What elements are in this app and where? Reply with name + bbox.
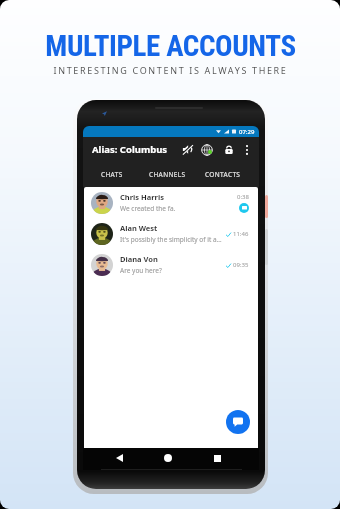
staticText: 0:38 [237, 193, 249, 201]
staticText: CHATS [101, 170, 123, 179]
staticText: We created the fa. [120, 204, 176, 213]
staticText: MULTIPLE ACCOUNTS [45, 29, 296, 63]
staticText: Alias: Columbus [92, 143, 168, 156]
button[interactable]: Network status [200, 143, 213, 156]
button[interactable]: Recent apps [210, 451, 224, 465]
staticText: 09:35 [233, 261, 249, 269]
button[interactable]: New message [226, 410, 250, 434]
button[interactable]: CONTACTS [195, 162, 250, 187]
staticText: CHANNELS [149, 170, 186, 179]
button[interactable]: More options [240, 143, 253, 156]
staticText: Diana Von [120, 254, 158, 264]
staticText: INTERESTING CONTENT IS ALWAYS THERE [53, 64, 288, 76]
button[interactable]: Back [112, 451, 126, 465]
staticText: It's possibly the simplicity of it all t… [120, 235, 222, 244]
staticText: Chris Harris [120, 192, 164, 202]
button[interactable]: Lock [222, 143, 235, 156]
button[interactable]: CHATS [84, 162, 140, 187]
staticText: 11:46 [233, 230, 249, 238]
button[interactable]: Home [161, 451, 175, 465]
button[interactable]: Mute notifications [181, 143, 194, 156]
staticText: Are you here? [120, 266, 162, 275]
staticText: Alan West [120, 223, 158, 233]
staticText: 07:29 [239, 128, 255, 136]
button[interactable]: Chris Harris [84, 187, 258, 218]
button[interactable]: CHANNELS [140, 162, 195, 187]
button[interactable]: Diana Von [84, 249, 258, 280]
button[interactable]: Alan West [84, 218, 258, 249]
staticText: CONTACTS [205, 170, 241, 179]
